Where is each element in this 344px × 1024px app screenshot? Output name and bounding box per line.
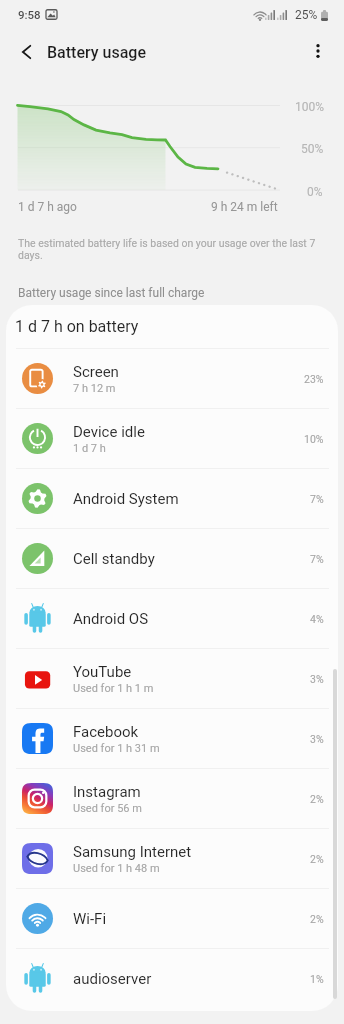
staticText: Android OS	[73, 610, 149, 628]
staticText: 3%	[310, 673, 324, 685]
button[interactable]: Facebook	[6, 709, 338, 768]
staticText: 0%	[307, 185, 323, 199]
staticText: Instagram	[73, 783, 141, 801]
staticText: Screen	[73, 363, 119, 381]
staticText: 9 h 24 m left	[211, 200, 278, 214]
staticText: Used for 1 h 1 m	[73, 682, 154, 695]
staticText: Facebook	[73, 723, 139, 741]
staticText: Device idle	[73, 423, 145, 441]
button[interactable]: Screen	[6, 349, 338, 408]
staticText: 1 d 7 h	[73, 442, 106, 455]
button[interactable]: Android System	[6, 469, 338, 528]
staticText: 4%	[310, 613, 324, 625]
staticText: 1 d 7 h ago	[18, 200, 77, 214]
staticText: 3%	[310, 733, 324, 745]
button[interactable]: Back	[8, 34, 44, 70]
staticText: 50%	[301, 142, 324, 156]
staticText: Samsung Internet	[73, 843, 192, 861]
staticText: 23%	[304, 373, 324, 385]
staticText: Android System	[73, 490, 179, 508]
staticText: Used for 1 h 31 m	[73, 742, 160, 755]
button[interactable]: Samsung Internet	[6, 829, 338, 888]
staticText: 7 h 12 m	[73, 382, 116, 395]
staticText: Used for 56 m	[73, 802, 142, 815]
staticText: Wi-Fi	[73, 910, 107, 928]
staticText: audioserver	[73, 970, 152, 988]
staticText: 10%	[304, 433, 324, 445]
staticText: 2%	[310, 793, 324, 805]
staticText: The estimated battery life is based on y…	[18, 237, 318, 262]
staticText: 1 d 7 h on battery	[15, 317, 139, 336]
staticText: 25%	[295, 8, 318, 22]
staticText: Used for 1 h 48 m	[73, 862, 160, 875]
button[interactable]: YouTube	[6, 649, 338, 708]
staticText: Cell standby	[73, 550, 155, 568]
staticText: 7%	[310, 493, 324, 505]
button[interactable]: Wi-Fi	[6, 889, 338, 948]
button[interactable]: Cell standby	[6, 529, 338, 588]
staticText: 1%	[310, 973, 324, 985]
staticText: Battery usage since last full charge	[18, 286, 205, 300]
button[interactable]: Device idle	[6, 409, 338, 468]
staticText: Battery usage	[47, 43, 147, 62]
staticText: YouTube	[73, 663, 132, 681]
staticText: 2%	[310, 853, 324, 865]
staticText: 9:58	[18, 8, 41, 21]
button[interactable]: More options	[300, 34, 336, 70]
button[interactable]: audioserver	[6, 949, 338, 1008]
staticText: 2%	[310, 913, 324, 925]
button[interactable]: Android OS	[6, 589, 338, 648]
staticText: 100%	[295, 100, 325, 114]
button[interactable]: Instagram	[6, 769, 338, 828]
staticText: 7%	[310, 553, 324, 565]
